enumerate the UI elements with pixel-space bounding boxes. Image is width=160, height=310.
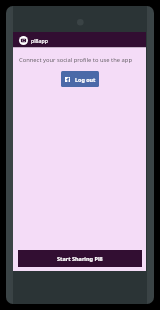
staticText: Log out	[75, 76, 96, 83]
staticText: pl8app	[31, 37, 48, 44]
button[interactable]: Start Sharing Pl8	[18, 250, 142, 267]
staticText: Connect your social profile to use the a…	[19, 56, 146, 64]
staticText: Start Sharing Pl8	[57, 255, 103, 262]
button[interactable]: Log out	[61, 71, 99, 87]
